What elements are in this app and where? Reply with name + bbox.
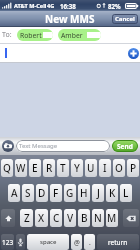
button[interactable]: Add contact	[128, 48, 139, 59]
staticText: T	[60, 161, 66, 175]
button[interactable]: N	[92, 209, 104, 227]
button[interactable]: T	[57, 159, 69, 177]
staticText: I	[103, 161, 107, 175]
staticText: D	[38, 186, 46, 200]
button[interactable]: L	[120, 184, 132, 202]
staticText: Send	[117, 142, 133, 151]
button[interactable]: A	[8, 184, 20, 202]
staticText: Robert	[20, 31, 42, 40]
staticText: To:	[2, 30, 12, 40]
button[interactable]: Z	[20, 209, 33, 227]
staticText: Cancel	[115, 15, 135, 23]
button[interactable]: U	[85, 159, 97, 177]
staticText: F	[53, 186, 59, 200]
staticText: K	[109, 186, 116, 200]
button[interactable]: Dictate	[16, 234, 25, 250]
staticText: Amber	[61, 31, 83, 40]
button[interactable]: Cancel	[112, 14, 138, 24]
button[interactable]: P	[127, 159, 139, 177]
button[interactable]: K	[106, 184, 118, 202]
button[interactable]: Shift	[1, 209, 15, 227]
button[interactable]: Q	[1, 159, 13, 177]
staticText: H	[80, 186, 88, 200]
button[interactable]: Amber	[58, 29, 101, 41]
button[interactable]: .	[84, 234, 95, 250]
button[interactable]: F	[50, 184, 62, 202]
staticText: L	[123, 186, 129, 200]
staticText: Q	[3, 161, 11, 175]
staticText: J	[97, 186, 100, 200]
button[interactable]: H	[78, 184, 90, 202]
button[interactable]: V	[64, 209, 76, 227]
button[interactable]: Y	[71, 159, 83, 177]
button[interactable]: J	[92, 184, 104, 202]
button[interactable]: S	[22, 184, 34, 202]
button[interactable]: D	[36, 184, 48, 202]
staticText: 4G	[47, 2, 55, 10]
staticText: Y	[74, 161, 80, 175]
staticText: C	[53, 211, 60, 225]
staticText: W	[16, 161, 26, 175]
staticText: X	[38, 211, 45, 225]
staticText: 82%	[108, 2, 121, 10]
button[interactable]: W	[15, 159, 27, 177]
staticText: space	[40, 238, 57, 246]
staticText: M	[107, 211, 117, 225]
staticText: P	[130, 161, 137, 175]
button[interactable]: G	[64, 184, 76, 202]
button[interactable]: Send	[112, 140, 138, 152]
staticText: 123	[2, 238, 14, 247]
staticText: @	[74, 238, 80, 247]
staticText: B	[81, 211, 88, 225]
staticText: O	[115, 161, 123, 175]
staticText: 16:38	[60, 2, 76, 10]
button[interactable]: O	[113, 159, 125, 177]
button[interactable]: Backspace	[123, 209, 139, 227]
button[interactable]: R	[43, 159, 55, 177]
button[interactable]: Robert	[17, 29, 53, 41]
staticText: G	[66, 186, 74, 200]
staticText: A	[11, 186, 18, 200]
staticText: R	[46, 161, 53, 175]
staticText: Z	[24, 211, 30, 225]
button[interactable]: B	[78, 209, 90, 227]
staticText: N	[94, 211, 102, 225]
button[interactable]: I	[99, 159, 111, 177]
button[interactable]: @	[71, 234, 82, 250]
button[interactable]: space	[27, 234, 69, 250]
button[interactable]: M	[106, 209, 118, 227]
staticText: .	[89, 238, 91, 247]
staticText: V	[67, 211, 74, 225]
staticText: Text Message	[19, 142, 58, 150]
button[interactable]: return	[97, 234, 139, 250]
button[interactable]: C	[50, 209, 62, 227]
staticText: S	[25, 186, 31, 200]
button[interactable]: 123	[1, 234, 14, 250]
button[interactable]: Camera	[2, 140, 14, 152]
staticText: New MMS	[45, 12, 95, 26]
staticText: AT&T M-Cell	[14, 2, 47, 10]
staticText: return	[108, 238, 128, 247]
button[interactable]: E	[29, 159, 41, 177]
staticText: E	[32, 161, 38, 175]
button[interactable]: Text Message	[16, 140, 110, 152]
button[interactable]: X	[35, 209, 48, 227]
staticText: U	[87, 161, 95, 175]
